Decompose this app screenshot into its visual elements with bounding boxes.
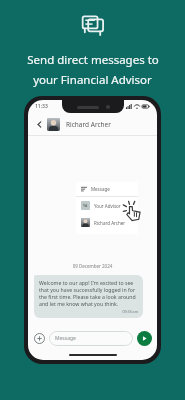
staticText: 09 December 2024 (34, 263, 151, 269)
button[interactable]: Send (137, 331, 152, 346)
staticText: Your Advisor (94, 203, 121, 209)
button[interactable]: Richard Archer (76, 214, 138, 231)
staticText: Welcome to our app! I'm excited to see t… (39, 279, 138, 307)
button[interactable]: Add attachment (33, 332, 45, 344)
staticText: 09:36 am (39, 309, 138, 314)
button[interactable]: YA (76, 197, 138, 214)
staticText: YA (83, 203, 88, 208)
button[interactable]: Back (33, 118, 45, 130)
staticText: Message (55, 335, 76, 342)
staticText: your Financial Advisor (33, 72, 152, 88)
other: Messages (81, 14, 105, 38)
button[interactable]: Message (49, 331, 133, 346)
staticText: 11:33 (35, 103, 48, 110)
staticText: Message (91, 186, 110, 192)
staticText: Richard Archer (94, 220, 126, 226)
button[interactable]: Message (76, 182, 138, 196)
staticText: Send direct messages to (27, 52, 159, 68)
staticText: Richard Archer (66, 120, 111, 129)
